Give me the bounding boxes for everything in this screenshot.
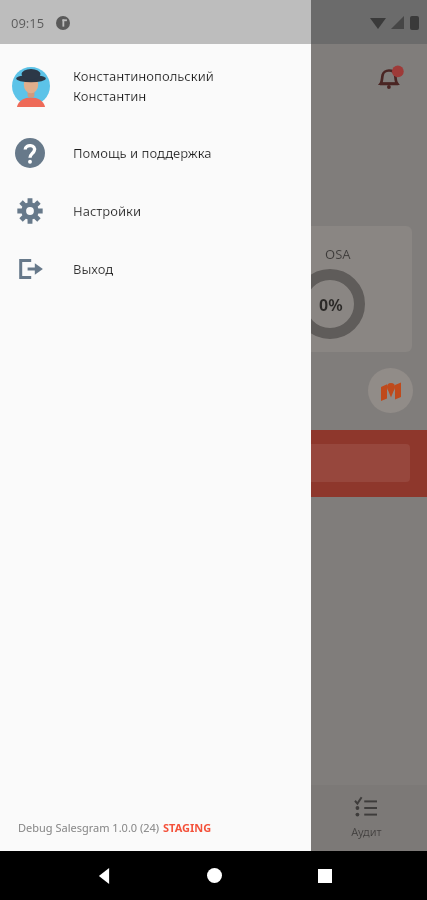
button[interactable] [0, 430, 427, 497]
button[interactable]: Notifications [372, 60, 410, 98]
button[interactable]: Аудит [326, 785, 406, 851]
button[interactable]: Помощь и поддержка [0, 129, 311, 177]
staticText: STAGING [163, 820, 212, 835]
staticText: OSA [325, 245, 351, 263]
staticText: Аудит [351, 824, 382, 839]
button[interactable]: Константинопольский Константин [0, 55, 311, 117]
staticText: Настройки [73, 202, 142, 220]
button[interactable]: Выход [0, 245, 311, 293]
button[interactable]: Map [368, 368, 413, 413]
staticText: Помощь и поддержка [73, 144, 212, 162]
staticText: Выход [73, 260, 114, 278]
button[interactable]: Back [74, 851, 134, 900]
staticText: Константинопольский Константин [73, 67, 214, 105]
button[interactable]: Recent apps [295, 851, 355, 900]
button[interactable] [20, 226, 412, 352]
button[interactable]: Home [184, 851, 244, 900]
button[interactable]: Настройки [0, 187, 311, 235]
staticText: Debug Salesgram 1.0.0 (24) [18, 820, 163, 835]
staticText: 0% [319, 294, 343, 316]
staticText: 09:15 [11, 14, 45, 32]
